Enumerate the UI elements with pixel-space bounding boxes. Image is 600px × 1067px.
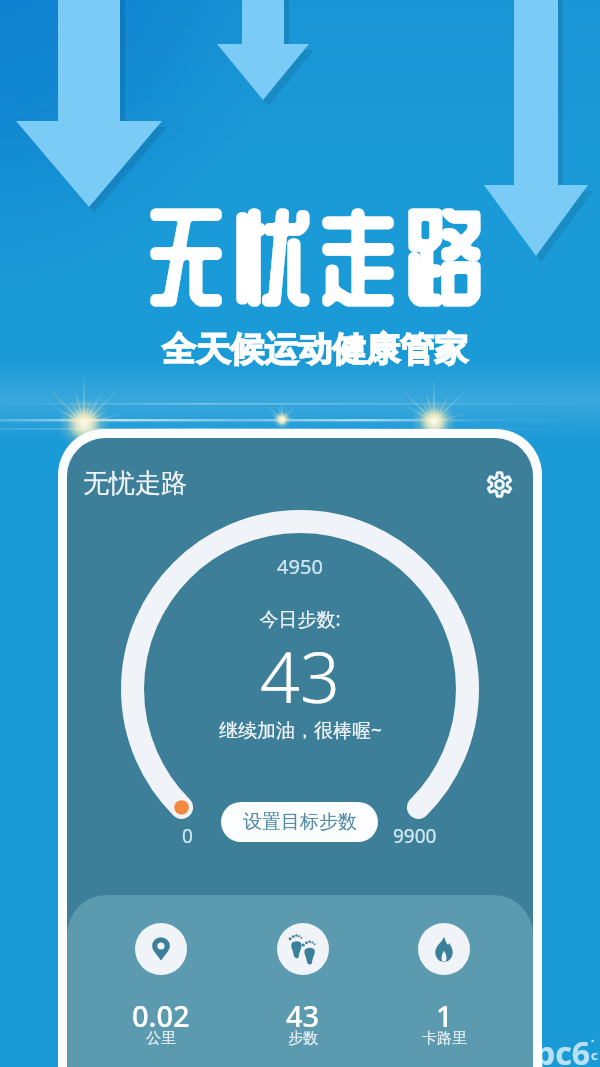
button[interactable]: Settings [478, 463, 520, 505]
staticText: 无忧走路 [83, 467, 187, 500]
staticText: .com [591, 1028, 600, 1064]
staticText: 步数 [288, 1029, 318, 1048]
staticText: 0.02 [132, 996, 190, 1035]
staticText: 43 [286, 996, 320, 1035]
button[interactable]: 0.02 [126, 923, 196, 1054]
staticText: 走 [319, 203, 398, 306]
staticText: 公里 [146, 1029, 176, 1048]
staticText: 全天候运动健康管家 [162, 328, 468, 371]
button[interactable]: 设置目标步数 [221, 802, 378, 842]
staticText: 今日步数: [259, 606, 341, 632]
staticText: 卡路里 [422, 1029, 467, 1048]
staticText: 0 [182, 823, 193, 849]
staticText: 设置目标步数 [243, 810, 357, 834]
staticText: 无 [147, 203, 226, 306]
staticText: pc6 [535, 1031, 591, 1067]
staticText: 43 [260, 628, 340, 723]
staticText: 忧 [233, 203, 312, 306]
staticText: 1 [436, 996, 453, 1035]
staticText: 9900 [393, 823, 437, 849]
staticText: 路 [405, 203, 484, 306]
button[interactable]: 1 [412, 923, 476, 1054]
button[interactable]: 43 [271, 923, 335, 1054]
staticText: 继续加油，很棒喔~ [219, 717, 382, 743]
staticText: 4950 [277, 553, 323, 580]
